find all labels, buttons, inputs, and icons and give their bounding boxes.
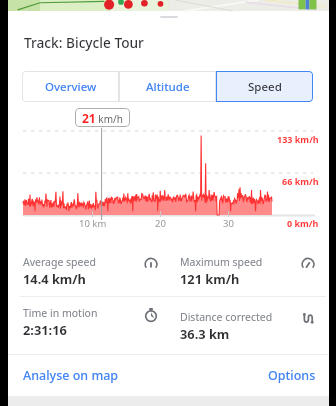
staticText: 66 km/h: [282, 175, 319, 187]
other: Maximum speed: [301, 257, 315, 271]
staticText: Average speed: [23, 255, 96, 269]
staticText: 36.3 km: [180, 325, 230, 342]
staticText: 14.4 km/h: [23, 270, 86, 287]
staticText: Analyse on map: [23, 367, 119, 384]
staticText: Altitude: [146, 79, 190, 95]
staticText: 121 km/h: [180, 270, 240, 287]
other: Time in motion: [144, 308, 158, 322]
button[interactable]: Maximum speed: [180, 246, 315, 296]
staticText: 2:31:16: [23, 321, 67, 338]
staticText: Speed: [248, 79, 282, 95]
button[interactable]: Altitude: [119, 71, 216, 102]
button[interactable]: Speed: [216, 71, 313, 102]
other: Distance corrected: [301, 312, 315, 326]
button[interactable]: Overview: [22, 71, 119, 102]
staticText: Time in motion: [23, 306, 98, 320]
staticText: Maximum speed: [180, 255, 263, 269]
button[interactable]: Time in motion: [23, 297, 158, 347]
staticText: Overview: [45, 79, 97, 95]
button[interactable]: Distance corrected: [180, 297, 315, 347]
staticText: Track: Bicycle Tour: [24, 33, 144, 52]
staticText: 0 km/h: [287, 217, 319, 229]
button[interactable]: Analyse on map: [8, 355, 268, 396]
other: Average speed: [144, 257, 158, 271]
staticText: Distance corrected: [180, 310, 273, 324]
staticText: 10 km: [79, 217, 107, 230]
staticText: 133 km/h: [277, 133, 319, 145]
staticText: 20: [155, 217, 166, 230]
staticText: 30: [223, 217, 234, 230]
staticText: Options: [268, 367, 316, 384]
staticText: 21 km/h: [82, 110, 123, 126]
button[interactable]: Average speed: [23, 246, 158, 296]
button[interactable]: Options: [268, 355, 329, 396]
